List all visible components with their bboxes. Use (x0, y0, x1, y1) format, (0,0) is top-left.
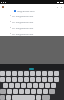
button[interactable]: key (37, 89, 42, 94)
button[interactable]: key (48, 71, 53, 76)
button[interactable]: key (30, 77, 35, 82)
staticText: To me@gmail.com (12, 32, 34, 35)
button[interactable]: key (13, 89, 18, 94)
button[interactable]: key (49, 89, 55, 94)
button[interactable]: key (9, 83, 14, 88)
button[interactable]: key (30, 71, 35, 76)
button[interactable]: key (7, 89, 12, 94)
button[interactable]: key (39, 83, 44, 88)
button[interactable]: key (31, 89, 36, 94)
button[interactable]: key (3, 83, 8, 88)
button[interactable]: key (45, 83, 50, 88)
button[interactable]: key (6, 95, 11, 100)
button[interactable]: key (12, 95, 35, 100)
button[interactable]: key (42, 77, 47, 82)
button[interactable]: To me@gmail.com (0, 18, 64, 24)
button[interactable]: key (36, 95, 41, 100)
button[interactable]: Send (59, 5, 63, 9)
button[interactable]: key (42, 71, 47, 76)
button[interactable]: key (36, 71, 41, 76)
button[interactable]: key (6, 71, 11, 76)
button[interactable]: key (54, 77, 59, 82)
button[interactable]: key (12, 71, 17, 76)
button[interactable]: key (12, 77, 17, 82)
button[interactable]: key (18, 71, 23, 76)
button[interactable]: Suggestion (29, 68, 34, 70)
button[interactable]: key (0, 71, 5, 76)
button[interactable]: key (27, 83, 32, 88)
button[interactable]: To me@gmail.com (0, 12, 64, 18)
button[interactable]: To me@gmail.com (0, 30, 64, 36)
button[interactable]: key (0, 89, 6, 94)
staticText: To me@gmail.com (12, 20, 34, 23)
button[interactable]: Back (1, 5, 4, 8)
button[interactable]: key (6, 77, 11, 82)
button[interactable]: key (36, 77, 41, 82)
button[interactable]: key (42, 95, 50, 100)
button[interactable]: key (54, 71, 59, 76)
button[interactable]: key (33, 83, 38, 88)
button[interactable]: key (15, 83, 20, 88)
button[interactable]: key (19, 89, 24, 94)
button[interactable]: key (24, 77, 29, 82)
button[interactable]: To me@gmail.com (0, 24, 64, 30)
staticText: me@gmail.com (17, 9, 35, 12)
staticText: To me@gmail.com (12, 14, 34, 17)
button[interactable]: key (24, 71, 29, 76)
button[interactable]: key (43, 89, 48, 94)
button[interactable]: key (18, 77, 23, 82)
button[interactable]: key (21, 83, 26, 88)
button[interactable]: key (25, 89, 30, 94)
button[interactable]: me@gmail.com (0, 9, 64, 12)
button[interactable]: key (0, 77, 5, 82)
button[interactable]: key (48, 77, 53, 82)
button[interactable]: key (51, 83, 56, 88)
button[interactable]: key (0, 95, 5, 100)
button[interactable]: Attach file (55, 5, 59, 9)
staticText: To me@gmail.com (12, 26, 34, 29)
